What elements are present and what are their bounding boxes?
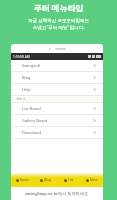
button[interactable]: Gallery Board	[11, 115, 103, 126]
staticText: 서비스	[16, 97, 26, 101]
button[interactable]: List Board	[11, 103, 103, 114]
staticText: 푸터 메뉴타입	[33, 2, 84, 13]
button[interactable]: Blog	[34, 173, 57, 187]
staticText: Swingsoft	[22, 63, 41, 68]
button[interactable]: Download	[11, 127, 103, 138]
staticText: List	[68, 178, 74, 182]
staticText: swing2app.co.kr에서 제작하세요	[25, 191, 89, 197]
button[interactable]: Help	[11, 84, 103, 95]
staticText: Home	[20, 178, 30, 182]
staticText: More	[90, 178, 98, 182]
staticText: Blog	[44, 178, 51, 182]
button[interactable]: Swingsoft	[11, 60, 103, 71]
staticText: Help	[22, 87, 31, 92]
staticText: List Board	[22, 106, 41, 111]
staticText: Gallery Board	[22, 118, 48, 123]
button[interactable]: More	[80, 173, 103, 187]
staticText: Blog	[22, 75, 31, 80]
button[interactable]: Home	[11, 173, 34, 187]
button[interactable]: Blog	[11, 72, 103, 83]
staticText: 1:10:59 AM	[13, 55, 30, 59]
staticText: 지금 선택하신 프로토타입에는 스냅고 '푸터 메뉴' 입니다.	[28, 17, 89, 31]
staticText: Download	[22, 130, 42, 135]
button[interactable]: List	[57, 173, 80, 187]
